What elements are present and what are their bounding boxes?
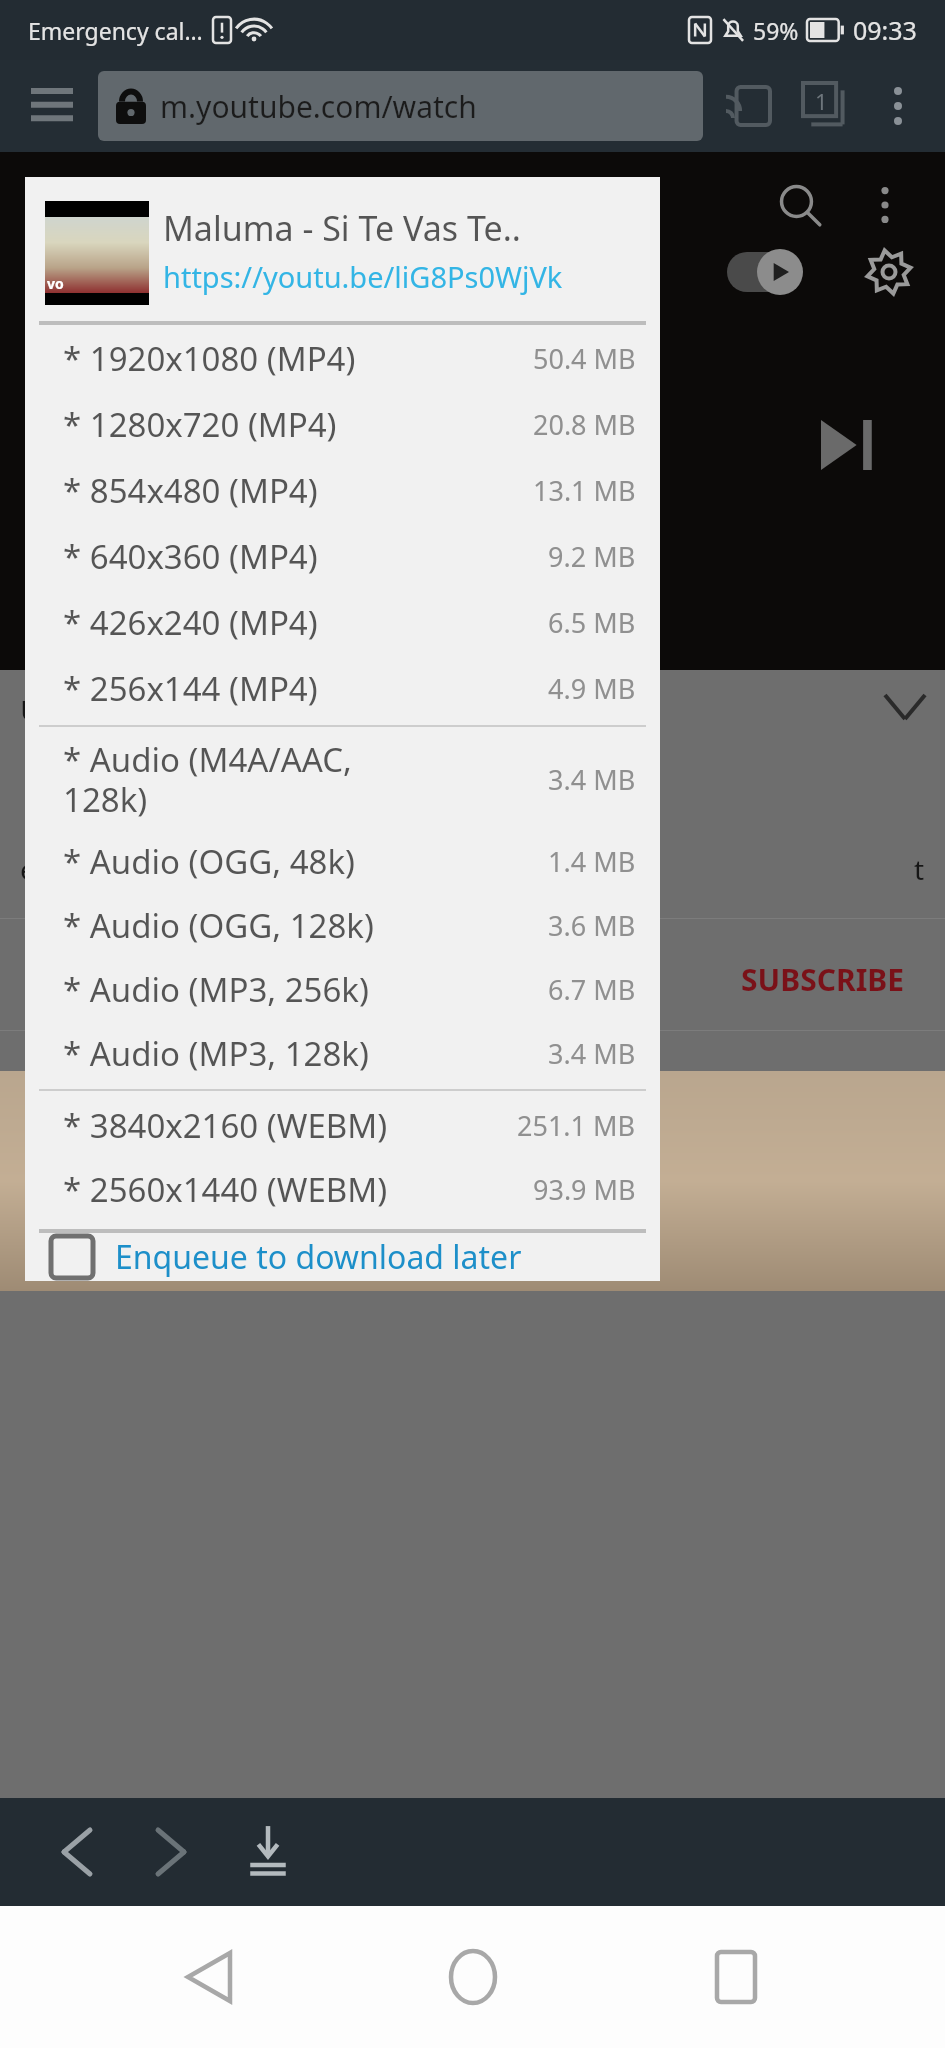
button[interactable]: * 2560x1440 (WEBM): [25, 1157, 660, 1221]
button[interactable]: Cast: [709, 67, 787, 145]
button[interactable]: * 3840x2160 (WEBM): [25, 1093, 660, 1157]
button[interactable]: Back: [30, 1805, 124, 1899]
staticText: * 256x144 (MP4): [63, 666, 318, 711]
button[interactable]: More options: [845, 165, 925, 245]
staticText: 3.4 MB: [548, 761, 636, 798]
staticText: * 1920x1080 (MP4): [63, 336, 356, 381]
staticText: t: [914, 850, 925, 888]
staticText: 3.6 MB: [548, 907, 636, 944]
button[interactable]: * 1280x720 (MP4): [25, 391, 660, 457]
staticText: SUBSCRIBE: [741, 959, 905, 1000]
staticText: 3.4 MB: [548, 1035, 636, 1072]
staticText: Emergency cal…: [28, 15, 203, 46]
staticText: 93.9 MB: [533, 1171, 636, 1208]
button[interactable]: Search: [755, 160, 845, 250]
staticText: * 2560x1440 (WEBM): [63, 1167, 388, 1212]
button[interactable]: * Audio (OGG, 48k): [25, 829, 660, 893]
button[interactable]: Enqueue to download later: [25, 1233, 660, 1281]
button[interactable]: Add to playlist: [525, 680, 637, 792]
button[interactable]: Home: [418, 1922, 528, 2032]
button[interactable]: Settings: [857, 240, 921, 304]
staticText: * Audio (MP3, 128k): [63, 1031, 369, 1076]
button[interactable]: Download: [525, 995, 637, 1107]
staticText: 50.4 MB: [533, 340, 636, 377]
button[interactable]: * Audio (MP3, 128k): [25, 1021, 660, 1085]
staticText: 13.1 MB: [533, 472, 636, 509]
button[interactable]: Autoplay: [723, 246, 833, 298]
button[interactable]: Share: [525, 585, 637, 697]
staticText: 6.5 MB: [548, 604, 636, 641]
staticText: 20.8 MB: [533, 406, 636, 443]
staticText: * 426x240 (MP4): [63, 600, 318, 645]
button[interactable]: Back: [154, 1922, 264, 2032]
staticText: 1: [815, 86, 828, 116]
staticText: * Audio (MP3, 256k): [63, 967, 369, 1012]
staticText: * 3840x2160 (WEBM): [63, 1103, 388, 1148]
button[interactable]: Forward: [124, 1805, 218, 1899]
staticText: 4.9 MB: [548, 670, 636, 707]
button[interactable]: * Audio (OGG, 128k): [25, 893, 660, 957]
staticText: * 640x360 (MP4): [63, 534, 318, 579]
staticText: 9.2 MB: [548, 538, 636, 575]
staticText: * Audio (OGG, 128k): [63, 903, 374, 948]
staticText: 6.7 MB: [548, 971, 636, 1008]
staticText: vo: [47, 274, 64, 293]
button[interactable]: vo: [45, 201, 644, 305]
staticText: 1.4 MB: [548, 843, 636, 880]
staticText: Maluma - Si Te Vas Te..: [163, 205, 521, 251]
button[interactable]: Downloads: [218, 1802, 318, 1902]
staticText: m.youtube.com/watch: [160, 86, 477, 127]
button[interactable]: * Audio (M4A/AAC, 128k): [25, 729, 660, 829]
staticText: 59%: [753, 15, 799, 46]
button[interactable]: More options: [865, 73, 931, 139]
button[interactable]: Tabs: [787, 67, 865, 145]
button[interactable]: Recent apps: [681, 1922, 791, 2032]
button[interactable]: * 854x480 (MP4): [25, 457, 660, 523]
staticText: 251.1 MB: [517, 1107, 636, 1144]
staticText: * 854x480 (MP4): [63, 468, 318, 513]
staticText: * Audio (OGG, 48k): [63, 839, 356, 884]
staticText: 09:33: [853, 13, 917, 47]
button[interactable]: * Audio (MP3, 256k): [25, 957, 660, 1021]
staticText: usic: [20, 684, 83, 730]
button[interactable]: * 640x360 (MP4): [25, 523, 660, 589]
staticText: Enqueue to download later: [115, 1235, 522, 1279]
staticText: e: [20, 850, 36, 888]
button[interactable]: * 1920x1080 (MP4): [25, 325, 660, 391]
button[interactable]: Menu: [14, 68, 90, 144]
button[interactable]: * 426x240 (MP4): [25, 589, 660, 655]
button[interactable]: m.youtube.com/watch: [98, 71, 703, 141]
staticText: * Audio (M4A/AAC, 128k): [63, 737, 352, 822]
staticText: https://youtu.be/liG8Ps0WjVk: [163, 257, 563, 296]
button[interactable]: Play: [525, 840, 637, 952]
button[interactable]: * 256x144 (MP4): [25, 655, 660, 721]
button[interactable]: Close: [525, 1162, 637, 1274]
staticText: * 1280x720 (MP4): [63, 402, 337, 447]
